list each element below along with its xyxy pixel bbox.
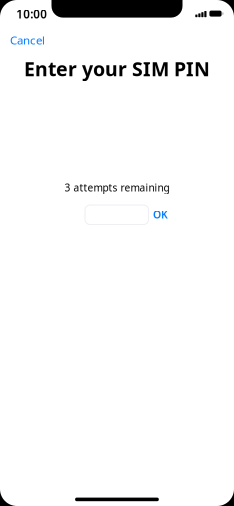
staticText: Cancel [10,32,45,48]
staticText: 10:00 [16,6,47,22]
staticText: OK [153,207,168,222]
staticText: Enter your SIM PIN [24,55,210,82]
button[interactable]: OK [153,206,171,222]
staticText: 3 attempts remaining [64,181,169,194]
button[interactable]: Cancel [10,29,54,51]
